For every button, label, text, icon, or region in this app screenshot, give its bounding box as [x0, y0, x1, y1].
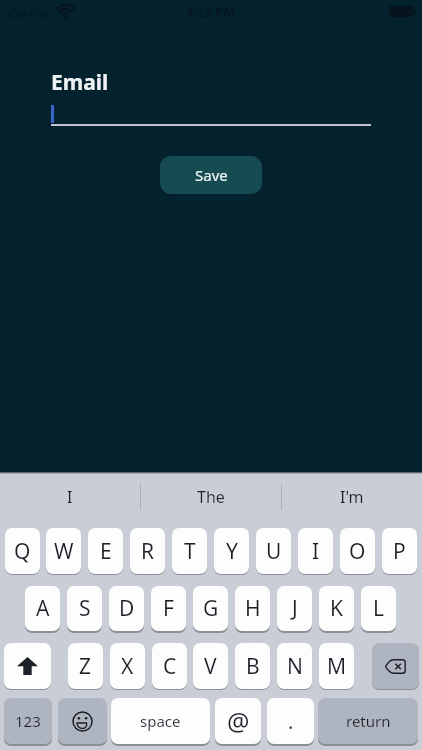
- staticText: N: [287, 652, 303, 681]
- button[interactable]: P: [382, 528, 417, 574]
- staticText: J: [292, 594, 298, 623]
- staticText: M: [327, 652, 347, 681]
- button[interactable]: X: [110, 643, 145, 689]
- staticText: Save: [195, 165, 228, 185]
- staticText: K: [330, 594, 343, 623]
- staticText: T: [184, 537, 196, 566]
- staticText: .: [288, 708, 294, 735]
- staticText: Email: [51, 68, 109, 97]
- staticText: P: [393, 537, 406, 566]
- button[interactable]: W: [46, 528, 81, 574]
- button[interactable]: [58, 698, 107, 744]
- button[interactable]: O: [340, 528, 375, 574]
- staticText: V: [204, 652, 217, 681]
- button[interactable]: The: [141, 473, 281, 521]
- button[interactable]: [372, 643, 419, 689]
- staticText: Y: [226, 537, 238, 566]
- button[interactable]: K: [319, 586, 354, 631]
- button[interactable]: A: [25, 586, 60, 631]
- button[interactable]: .: [267, 698, 314, 744]
- staticText: @: [227, 704, 250, 738]
- button[interactable]: C: [152, 643, 187, 689]
- staticText: X: [121, 652, 134, 681]
- button[interactable]: B: [235, 643, 270, 689]
- staticText: The: [197, 486, 225, 508]
- staticText: Z: [79, 652, 92, 681]
- button[interactable]: J: [277, 586, 312, 631]
- button[interactable]: M: [319, 643, 354, 689]
- staticText: I'm: [340, 486, 364, 508]
- staticText: D: [119, 594, 135, 623]
- button[interactable]: return: [318, 698, 418, 744]
- button[interactable]: G: [193, 586, 228, 631]
- staticText: F: [163, 594, 174, 623]
- button[interactable]: U: [256, 528, 291, 574]
- button[interactable]: F: [151, 586, 186, 631]
- staticText: 123: [15, 711, 41, 731]
- button[interactable]: 123: [4, 698, 52, 744]
- staticText: O: [349, 537, 366, 566]
- staticText: S: [79, 594, 91, 623]
- button[interactable]: L: [361, 586, 396, 631]
- staticText: H: [245, 594, 261, 623]
- staticText: 4:23 PM: [186, 3, 236, 19]
- staticText: I: [67, 486, 73, 508]
- staticText: R: [141, 537, 155, 566]
- staticText: B: [246, 652, 260, 681]
- button[interactable]: E: [88, 528, 123, 574]
- staticText: return: [346, 711, 391, 731]
- button[interactable]: H: [235, 586, 270, 631]
- button[interactable]: D: [109, 586, 144, 631]
- staticText: C: [163, 652, 177, 681]
- button[interactable]: T: [172, 528, 207, 574]
- button[interactable]: V: [193, 643, 228, 689]
- button[interactable]: Y: [214, 528, 249, 574]
- button[interactable]: Z: [68, 643, 103, 689]
- staticText: space: [140, 711, 181, 731]
- button[interactable]: space: [111, 698, 210, 744]
- staticText: G: [203, 594, 219, 623]
- staticText: U: [266, 537, 282, 566]
- button[interactable]: @: [215, 698, 261, 744]
- staticText: E: [100, 537, 112, 566]
- button[interactable]: I: [298, 528, 333, 574]
- button[interactable]: Q: [5, 528, 40, 574]
- staticText: I: [312, 537, 320, 566]
- button[interactable]: I'm: [282, 473, 422, 521]
- staticText: W: [54, 537, 74, 566]
- staticText: L: [373, 594, 385, 623]
- staticText: Carrier: [8, 4, 51, 22]
- button[interactable]: S: [67, 586, 102, 631]
- button[interactable]: [4, 643, 51, 689]
- staticText: Q: [14, 537, 31, 566]
- button[interactable]: N: [277, 643, 312, 689]
- button[interactable]: I: [0, 473, 140, 521]
- button[interactable]: Save: [160, 156, 262, 194]
- button[interactable]: [51, 100, 371, 127]
- staticText: A: [36, 594, 50, 623]
- button[interactable]: R: [130, 528, 165, 574]
